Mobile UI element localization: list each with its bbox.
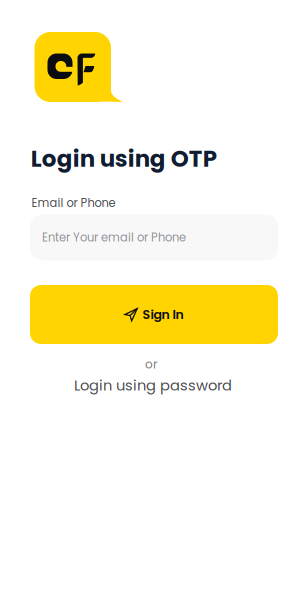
- staticText: Sign In: [142, 306, 183, 323]
- staticText: Login using OTP: [31, 143, 217, 175]
- staticText: Enter Your email or Phone: [42, 229, 186, 246]
- staticText: Email or Phone: [31, 195, 115, 211]
- staticText: Login using password: [74, 375, 232, 395]
- button[interactable]: Login using password: [2, 375, 302, 395]
- button[interactable]: Enter Your email or Phone: [30, 214, 278, 260]
- staticText: or: [145, 356, 157, 373]
- button[interactable]: Sign In: [30, 285, 278, 344]
